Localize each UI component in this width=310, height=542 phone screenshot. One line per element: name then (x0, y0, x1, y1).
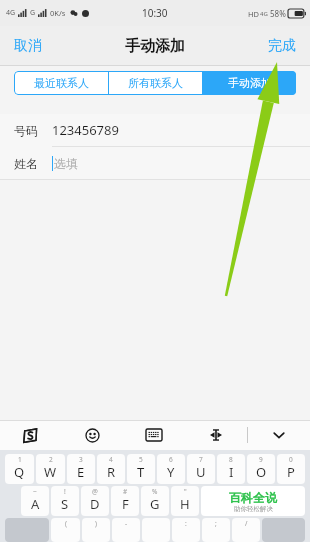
staticText: 3 (79, 455, 83, 464)
staticText: 助你轻松解决 (234, 505, 273, 513)
staticText: Y (167, 463, 175, 481)
staticText: 最近联系人 (34, 76, 89, 90)
staticText: G (30, 8, 36, 18)
button[interactable]: 完成 (254, 29, 310, 63)
staticText: 123456789 (52, 121, 119, 139)
button[interactable]: " (171, 486, 199, 516)
staticText: 9 (259, 455, 263, 464)
staticText: ( (65, 519, 67, 528)
staticText: 号码 (14, 123, 38, 138)
button[interactable]: 5 (127, 454, 155, 484)
button[interactable]: ~ (21, 486, 49, 516)
staticText: - (125, 519, 128, 528)
button[interactable]: 7 (187, 454, 215, 484)
staticText: # (123, 487, 128, 496)
staticText: H (180, 495, 190, 513)
staticText: 手动添加 (228, 76, 272, 90)
button[interactable]: @ (81, 486, 109, 516)
staticText: 5 (139, 455, 143, 464)
button[interactable]: 9 (247, 454, 275, 484)
staticText: ~ (33, 487, 37, 496)
staticText: Q (14, 463, 25, 481)
staticText: T (137, 463, 145, 481)
staticText: 1 (18, 455, 22, 464)
button[interactable]: 姓名 (0, 147, 310, 179)
staticText: 手动添加 (125, 37, 185, 56)
staticText: A (31, 495, 40, 513)
staticText: 姓名 (14, 156, 38, 171)
button[interactable]: ! (51, 486, 79, 516)
staticText: : (185, 519, 187, 528)
button[interactable]: 所有联系人 (109, 71, 202, 95)
button[interactable]: 3 (67, 454, 95, 484)
button[interactable]: % (141, 486, 169, 516)
staticText: ! (64, 487, 66, 496)
staticText: HD (248, 9, 260, 19)
button[interactable]: - (112, 518, 140, 542)
staticText: R (107, 463, 116, 481)
staticText: 10:30 (142, 6, 168, 20)
staticText: 0K/s (50, 8, 66, 18)
staticText: P (287, 463, 295, 481)
staticText: D (90, 495, 100, 513)
button[interactable]: Sogou input method (0, 420, 61, 450)
button[interactable]: Emoji (61, 420, 123, 450)
staticText: " (184, 487, 187, 496)
button[interactable]: 2 (36, 454, 65, 484)
button[interactable]: 号码 (0, 114, 310, 146)
button[interactable]: Move cursor (185, 420, 247, 450)
button[interactable]: 1 (5, 454, 34, 484)
button[interactable]: ; (202, 518, 230, 542)
button[interactable]: ) (82, 518, 110, 542)
staticText: I (229, 463, 234, 481)
staticText: 4 (109, 455, 113, 464)
staticText: G (150, 495, 160, 513)
staticText: % (152, 487, 158, 496)
button[interactable]: # (111, 486, 139, 516)
button[interactable]: 8 (217, 454, 245, 484)
staticText: 百科全说 (229, 490, 277, 505)
staticText: 58% (270, 8, 286, 19)
staticText: S (61, 495, 69, 513)
staticText: 所有联系人 (128, 76, 183, 90)
staticText: 0 (289, 455, 293, 464)
staticText: E (77, 463, 85, 481)
button[interactable]: 取消 (0, 29, 56, 63)
staticText: ; (215, 519, 217, 528)
staticText: 7 (199, 455, 203, 464)
staticText: @ (92, 487, 98, 496)
button[interactable]: Keyboard layout (123, 420, 185, 450)
button[interactable]: ( (51, 518, 80, 542)
button[interactable]: 百科全说 (201, 486, 305, 516)
button[interactable]: : (172, 518, 200, 542)
button[interactable]: Hide keyboard (248, 420, 310, 450)
staticText: 完成 (268, 37, 296, 55)
staticText: F (122, 495, 129, 513)
staticText: 4G (6, 8, 16, 18)
button[interactable]: 6 (157, 454, 185, 484)
staticText: O (256, 463, 267, 481)
staticText: ) (95, 519, 97, 528)
staticText: 2 (49, 455, 53, 464)
staticText: 取消 (14, 37, 42, 55)
button[interactable]: 0 (277, 454, 305, 484)
staticText: 6 (169, 455, 173, 464)
button[interactable]: 4 (97, 454, 125, 484)
button[interactable]: 最近联系人 (14, 71, 108, 95)
button[interactable]: / (232, 518, 260, 542)
staticText: 8 (229, 455, 233, 464)
staticText: / (245, 519, 248, 528)
button[interactable]: 手动添加 (203, 71, 296, 95)
staticText: U (196, 463, 206, 481)
staticText: 4G (260, 10, 268, 18)
staticText: W (44, 463, 57, 481)
staticText: 选填 (54, 156, 78, 171)
